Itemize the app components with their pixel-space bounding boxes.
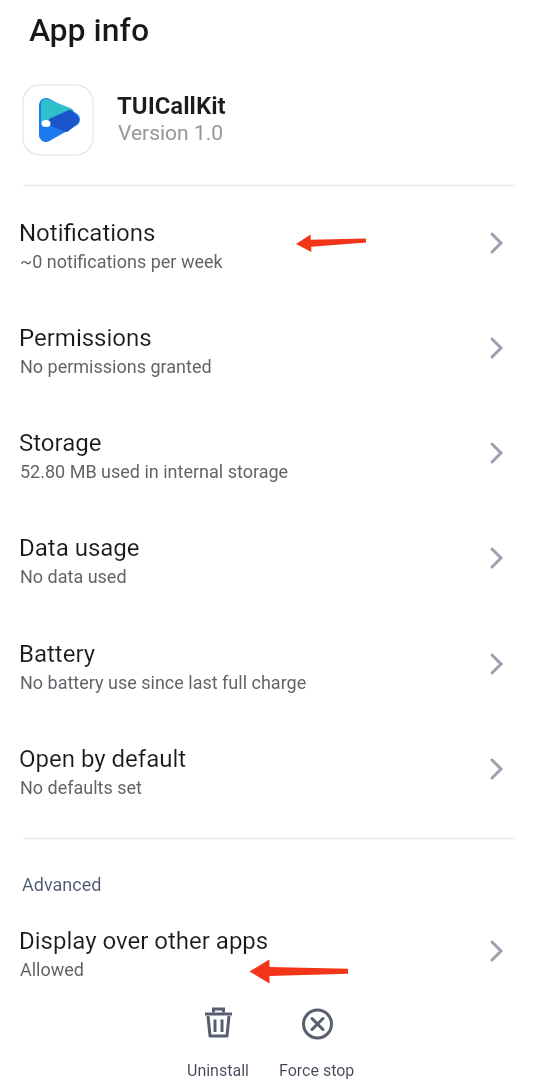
staticText: Notifications bbox=[19, 219, 156, 247]
staticText: Storage bbox=[19, 429, 102, 457]
staticText: TUICallKit bbox=[117, 92, 226, 120]
button[interactable]: Uninstall bbox=[172, 993, 265, 1086]
staticText: Uninstall bbox=[187, 1061, 249, 1080]
button[interactable]: Battery bbox=[0, 606, 538, 711]
staticText: Version 1.0 bbox=[118, 121, 224, 146]
staticText: Advanced bbox=[22, 874, 102, 895]
staticText: App info bbox=[29, 11, 150, 49]
button[interactable]: Permissions bbox=[0, 290, 538, 395]
staticText: Display over other apps bbox=[19, 927, 269, 955]
staticText: 52.80 MB used in internal storage bbox=[20, 461, 289, 482]
button[interactable]: Open by default bbox=[0, 711, 538, 816]
staticText: No defaults set bbox=[20, 777, 142, 798]
staticText: No battery use since last full charge bbox=[20, 672, 307, 693]
staticText: Permissions bbox=[19, 324, 152, 352]
staticText: ~0 notifications per week bbox=[20, 251, 223, 272]
button[interactable]: Force stop bbox=[271, 993, 364, 1086]
staticText: Data usage bbox=[19, 534, 140, 562]
staticText: Battery bbox=[19, 640, 96, 668]
button[interactable]: Storage bbox=[0, 395, 538, 500]
staticText: Open by default bbox=[19, 745, 187, 773]
staticText: No data used bbox=[20, 566, 127, 587]
staticText: Allowed bbox=[20, 959, 84, 980]
button[interactable]: Data usage bbox=[0, 500, 538, 605]
staticText: Force stop bbox=[279, 1061, 355, 1080]
button[interactable]: Display over other apps bbox=[0, 893, 538, 998]
staticText: No permissions granted bbox=[20, 356, 212, 377]
button[interactable]: Notifications bbox=[0, 185, 538, 290]
